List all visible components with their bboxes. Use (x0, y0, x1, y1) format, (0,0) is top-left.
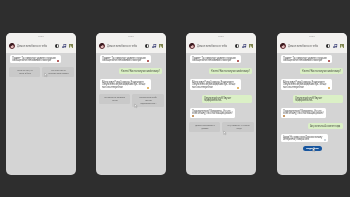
staticText: Оккультный клуб? (139, 96, 157, 99)
button[interactable]: Music (62, 44, 66, 48)
button[interactable]: Кто это? Как ты получил мой номер? (119, 68, 162, 74)
staticText: Оккультный клуб? Звучит подозрительно... (204, 96, 231, 102)
staticText: Привет~ Ты, наверное, удивлен, получив с… (12, 56, 56, 62)
button[interactable]: Привет~ Ты, наверное, удивлен, получив с… (190, 55, 241, 63)
staticText: Привет~ Ты, наверное, удивлен, получив с… (283, 56, 327, 62)
button[interactable]: Profile picture (280, 43, 286, 49)
staticText: Подробнее (306, 147, 319, 150)
staticText: Меня зовут Рики Гримуар. Я президент Окк… (102, 80, 146, 89)
staticText: Кто это? Как ты получил мой номер? (121, 69, 160, 73)
button[interactable]: Меня зовут Рики Гримуар. Я президент Окк… (281, 79, 332, 90)
staticText: Это какая-то ролевая (104, 96, 125, 99)
button[interactable]: Меня зовут Рики Гримуар. Я президент Окк… (100, 79, 151, 90)
staticText: Привет~ Ты, наверное, удивлен, получив с… (192, 56, 236, 62)
button[interactable]: Подозрительно? Возможно... Но что, если … (190, 108, 235, 118)
button[interactable]: Подозрительно? Возможно... Но что, если … (281, 108, 326, 118)
button[interactable]: Gallery (249, 44, 253, 48)
button[interactable]: Оккультный клуб? Звучит подозрительно... (293, 95, 343, 103)
staticText: Демон влюбился в тебя (17, 44, 55, 48)
button[interactable]: Gallery (340, 44, 344, 48)
staticText: Демон влюбился в тебя (197, 44, 235, 48)
button[interactable]: Подробнее (303, 146, 322, 151)
button[interactable]: Кто это? Как ты получил мой номер? (300, 68, 343, 74)
staticText: Ага, конечно. А я ангел (227, 124, 250, 127)
button[interactable]: Gallery (69, 44, 73, 48)
button[interactable]: Music (152, 44, 156, 48)
staticText: подозрительно... (140, 102, 157, 105)
staticText: 12:34 (309, 35, 315, 38)
staticText: докажу (201, 127, 209, 130)
button[interactable]: Демон? Серьезно? Я (189, 122, 220, 132)
staticText: Подозрительно? Возможно... Но что, если … (283, 109, 324, 115)
button[interactable]: Привет~ Ты, наверное, удивлен, получив с… (10, 55, 61, 63)
button[interactable]: Привет~ Ты, наверное, удивлен, получив с… (100, 55, 151, 63)
button[interactable]: Toggle theme (55, 44, 59, 48)
button[interactable]: Оккультный клуб? Звучит подозрительно... (202, 95, 252, 103)
staticText: Привет~ Ты, наверное, удивлен, получив с… (102, 56, 146, 62)
button[interactable]: Ага, конечно. А я ангел (222, 122, 254, 132)
staticText: Меня зовут Рики Гримуар. Я президент Окк… (192, 80, 236, 89)
button[interactable]: Toggle theme (326, 44, 330, 48)
button[interactable]: Toggle theme (145, 44, 149, 48)
staticText: Меня зовут Рики Гримуар. Я президент Окк… (283, 80, 327, 89)
staticText: Оккультный клуб? Звучит подозрительно... (295, 96, 322, 102)
staticText: Кто это? Как ты (51, 69, 66, 72)
staticText: игра? (112, 99, 118, 102)
staticText: Звучит (145, 99, 152, 102)
staticText: Кто это? Как ты получил мой номер? (211, 69, 250, 73)
button[interactable]: Profile picture (9, 43, 15, 49)
staticText: Подозрительно? Возможно... Но что, если … (192, 109, 233, 115)
button[interactable]: Toggle theme (235, 44, 239, 48)
button[interactable]: Если это сон, то (9, 67, 40, 77)
button[interactable]: Music (333, 44, 337, 48)
staticText: 12:34 (128, 35, 134, 38)
staticText: Демон влюбился в тебя (107, 44, 145, 48)
button[interactable]: Gallery (159, 44, 163, 48)
staticText: Кто это? Как ты получил мой номер? (302, 69, 341, 73)
staticText: Демон? Серьезно? Я (195, 124, 215, 127)
button[interactable]: Ахаха! Ну, какая сила Демона покажу инте… (281, 134, 328, 142)
staticText: Демон влюбился в тебя (288, 44, 326, 48)
staticText: 12:34 (218, 35, 224, 38)
staticText: сразу я бога (19, 72, 31, 75)
button[interactable]: Оккультный клуб? (132, 94, 164, 107)
button[interactable]: Кто это? Как ты получил мой номер? (209, 68, 252, 74)
staticText: Если это сон, то (17, 69, 33, 72)
staticText: Ахаха! Ну, какая сила Демона покажу инте… (283, 135, 323, 141)
staticText: Ага, конечно. А я ангел тогда (310, 124, 341, 128)
button[interactable]: Кто это? Как ты (42, 67, 74, 77)
staticText: тогда (236, 127, 242, 130)
button[interactable]: Меня зовут Рики Гримуар. Я президент Окк… (190, 79, 241, 90)
button[interactable]: Это какая-то ролевая (99, 94, 130, 104)
button[interactable]: Ага, конечно. А я ангел тогда (308, 123, 343, 129)
staticText: 12:34 (38, 35, 44, 38)
button[interactable]: Music (242, 44, 246, 48)
staticText: получил мой номер? (48, 72, 69, 75)
button[interactable]: Привет~ Ты, наверное, удивлен, получив с… (281, 55, 332, 63)
button[interactable]: Profile picture (99, 43, 105, 49)
button[interactable]: Profile picture (189, 43, 195, 49)
